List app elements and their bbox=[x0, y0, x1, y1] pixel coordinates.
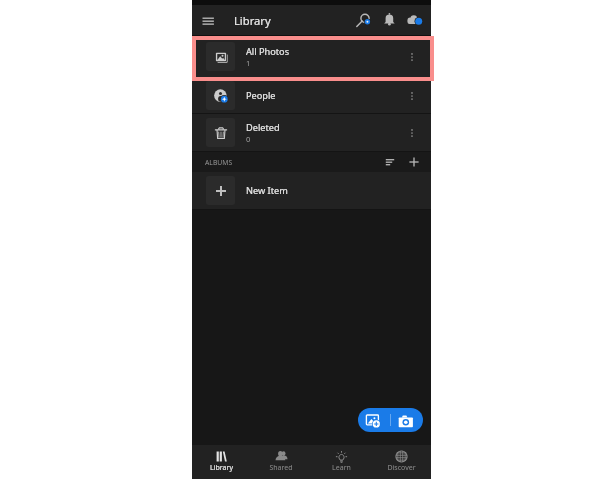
button[interactable]: Sort bbox=[381, 153, 399, 171]
button[interactable]: Shared bbox=[251, 445, 311, 479]
button[interactable]: People bbox=[192, 78, 431, 113]
button[interactable]: Deleted bbox=[192, 114, 431, 151]
staticText: All Photos bbox=[246, 45, 290, 58]
button[interactable]: Camera bbox=[391, 408, 423, 432]
button[interactable]: More options bbox=[403, 48, 421, 66]
button[interactable]: All Photos bbox=[192, 36, 431, 77]
button[interactable]: Add photos bbox=[358, 408, 390, 432]
button[interactable]: More options bbox=[403, 124, 421, 142]
staticText: Deleted bbox=[246, 121, 280, 134]
staticText: New Item bbox=[246, 184, 288, 197]
staticText: People bbox=[246, 89, 276, 102]
button[interactable]: Cloud status bbox=[402, 7, 428, 33]
staticText: Library bbox=[210, 463, 233, 473]
staticText: Discover bbox=[387, 463, 416, 473]
button[interactable]: Notifications bbox=[375, 7, 401, 33]
button[interactable]: More options bbox=[403, 87, 421, 105]
staticText: 0 bbox=[246, 134, 251, 144]
button[interactable]: Library bbox=[192, 445, 251, 479]
button[interactable]: Add album bbox=[405, 153, 423, 171]
staticText: Library bbox=[234, 13, 271, 28]
staticText: Learn bbox=[332, 463, 351, 473]
staticText: ALBUMS bbox=[205, 158, 233, 167]
button[interactable]: Search bbox=[348, 7, 374, 33]
staticText: Shared bbox=[269, 463, 293, 473]
button[interactable]: Menu bbox=[200, 9, 222, 31]
staticText: 1 bbox=[246, 58, 251, 68]
button[interactable]: Learn bbox=[311, 445, 371, 479]
button[interactable]: Discover bbox=[371, 445, 431, 479]
button[interactable]: New Item bbox=[192, 172, 431, 209]
